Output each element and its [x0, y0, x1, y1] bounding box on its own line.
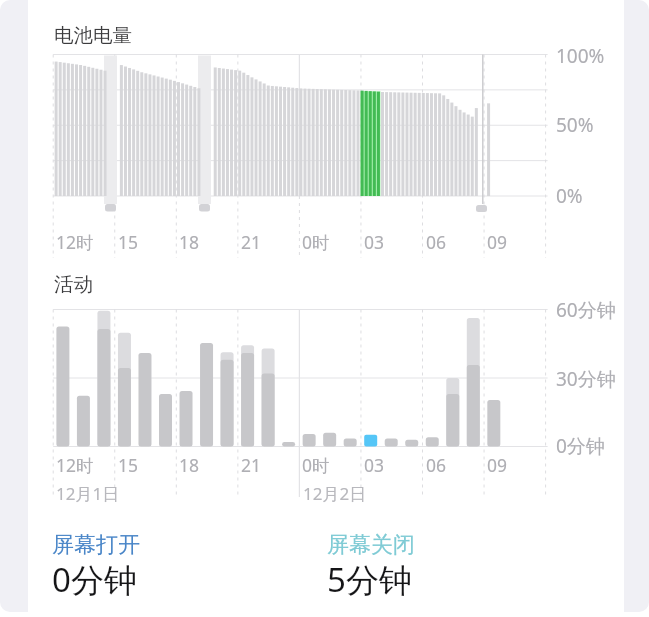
staticText: 60分钟 [556, 297, 616, 323]
staticText: 15 [118, 230, 139, 254]
staticText: 21 [241, 453, 262, 477]
staticText: 09 [487, 230, 508, 254]
staticText: 21 [241, 230, 262, 254]
staticText: 0分钟 [556, 433, 605, 459]
staticText: 0分钟 [52, 557, 137, 602]
staticText: 0% [556, 183, 583, 209]
staticText: 03 [364, 453, 385, 477]
staticText: 18 [179, 230, 200, 254]
button[interactable]: 屏幕关闭 [327, 527, 447, 595]
staticText: 12时 [56, 230, 94, 254]
staticText: 屏幕关闭 [327, 531, 415, 559]
staticText: 电池电量 [54, 23, 132, 48]
staticText: 15 [118, 453, 139, 477]
staticText: 50% [556, 112, 594, 138]
staticText: 100% [556, 43, 605, 69]
staticText: 18 [179, 453, 200, 477]
staticText: 0时 [302, 230, 330, 254]
staticText: 5分钟 [327, 557, 412, 602]
staticText: 12月2日 [303, 482, 367, 505]
staticText: 06 [426, 230, 447, 254]
staticText: 屏幕打开 [52, 531, 140, 559]
staticText: 活动 [54, 272, 93, 297]
staticText: 03 [364, 230, 385, 254]
staticText: 06 [426, 453, 447, 477]
staticText: 0时 [302, 453, 330, 477]
staticText: 12时 [56, 453, 94, 477]
staticText: 30分钟 [556, 366, 616, 392]
staticText: 12月1日 [56, 482, 120, 505]
staticText: 09 [487, 453, 508, 477]
button[interactable]: 屏幕打开 [52, 527, 172, 595]
